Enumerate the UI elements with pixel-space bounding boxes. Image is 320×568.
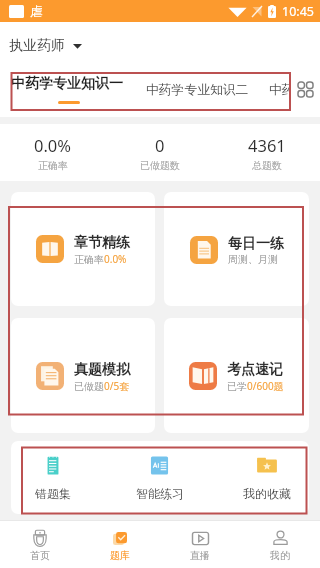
button[interactable]: 我的	[240, 521, 320, 568]
staticText: 0	[155, 134, 165, 156]
button[interactable]: 每日一练	[164, 192, 309, 306]
button[interactable]: 0	[106, 124, 213, 181]
staticText: 10:45	[282, 3, 314, 20]
staticText: 执业药师	[9, 37, 65, 55]
staticText: 我的收藏	[243, 486, 291, 501]
staticText: 智能练习	[136, 486, 184, 501]
button[interactable]: 章节精练	[11, 192, 155, 306]
button[interactable]: 错题集	[0, 441, 106, 514]
staticText: 章节精练	[74, 234, 130, 252]
button[interactable]: 执业药师	[7, 31, 84, 61]
button[interactable]: 我的收藏	[213, 441, 320, 514]
staticText: 中药学专业知识一	[11, 75, 123, 93]
staticText: 题库	[110, 549, 130, 562]
staticText: 我的	[270, 549, 290, 562]
staticText: 正确率0.0%	[74, 252, 127, 266]
staticText: 首页	[30, 549, 50, 562]
staticText: 已做题数	[140, 159, 180, 172]
button[interactable]: 题库	[80, 521, 160, 568]
button[interactable]: 首页	[0, 521, 80, 568]
staticText: 0.0%	[34, 134, 72, 156]
button[interactable]: 真题模拟	[11, 318, 155, 433]
button[interactable]: 智能练习	[106, 441, 213, 514]
staticText: 真题模拟	[74, 361, 130, 379]
staticText: 虐	[30, 3, 43, 19]
button[interactable]: All subjects	[291, 62, 320, 117]
button[interactable]: 4361	[213, 124, 320, 181]
staticText: 直播	[190, 549, 210, 562]
staticText: 正确率	[38, 159, 68, 172]
staticText: 每日一练	[228, 235, 284, 253]
staticText: 已做题0/5套	[74, 379, 130, 393]
button[interactable]: 中药学专业知识二	[146, 74, 249, 106]
button[interactable]: 0.0%	[0, 124, 106, 181]
staticText: 考点速记	[227, 361, 283, 379]
button[interactable]: 中药学专业知识一	[4, 69, 130, 110]
staticText: 周测、月测	[228, 253, 278, 266]
staticText: 错题集	[35, 486, 71, 501]
staticText: 已学0/600题	[227, 379, 284, 393]
staticText: 中药学专业	[269, 82, 291, 98]
button[interactable]: 中药学专业	[269, 74, 291, 106]
staticText: 总题数	[252, 159, 282, 172]
button[interactable]: 直播	[160, 521, 240, 568]
button[interactable]: 考点速记	[164, 318, 309, 433]
staticText: 4361	[248, 134, 286, 156]
